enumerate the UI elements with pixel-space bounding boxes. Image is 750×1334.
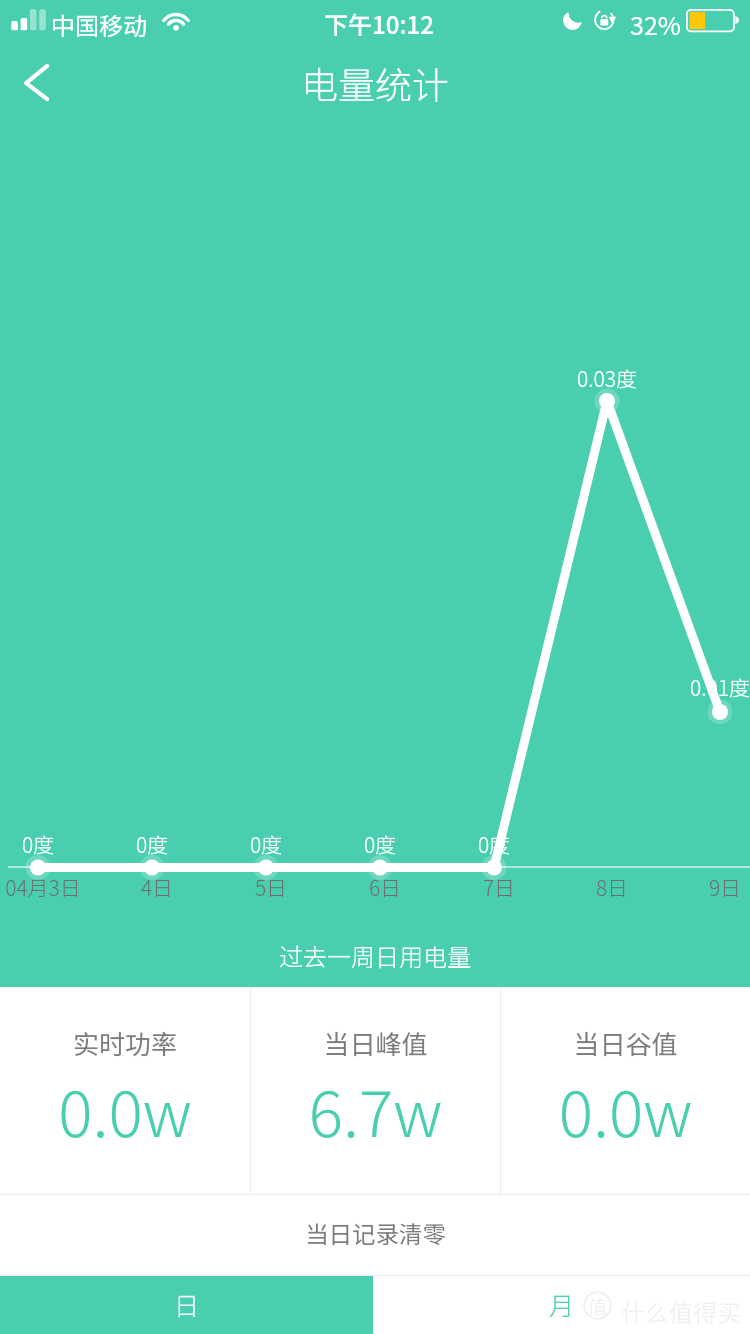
staticText: 04月3日	[0, 872, 123, 902]
staticText: 0度	[186, 829, 346, 859]
staticText: 7日	[419, 872, 579, 902]
staticText: 32%	[630, 6, 681, 42]
staticText: 中国移动	[51, 7, 147, 42]
staticText: 4日	[77, 872, 237, 902]
staticText: 日	[174, 1286, 200, 1322]
staticText: 过去一周日用电量	[0, 938, 750, 973]
staticText: 6.7w	[251, 1063, 500, 1156]
staticText: 8日	[532, 872, 692, 902]
staticText: 0度	[0, 829, 118, 859]
button[interactable]: Back	[0, 44, 76, 132]
staticText: 什么值得买	[621, 1294, 741, 1329]
button[interactable]: 日	[0, 1276, 373, 1334]
staticText: 电量统计	[0, 56, 750, 110]
staticText: 当日记录清零	[305, 1216, 446, 1250]
staticText: 下午10:12	[4, 6, 750, 41]
button[interactable]: 实时功率	[0, 987, 250, 1194]
staticText: 6日	[305, 872, 465, 902]
staticText: 9日	[645, 872, 750, 902]
staticText: 月	[549, 1286, 575, 1322]
staticText: 值	[588, 1292, 608, 1320]
staticText: 实时功率	[0, 1024, 250, 1062]
staticText: 当日峰值	[251, 1024, 500, 1062]
button[interactable]: 当日记录清零	[0, 1195, 750, 1275]
staticText: 0.01度	[640, 672, 750, 702]
staticText: 0度	[300, 829, 460, 859]
button[interactable]: 当日峰值	[251, 987, 500, 1194]
button[interactable]: 当日谷值	[501, 987, 750, 1194]
staticText: 0度	[72, 829, 232, 859]
button[interactable]: 月	[373, 1276, 750, 1334]
staticText: 当日谷值	[501, 1024, 750, 1062]
staticText: 0.03度	[527, 363, 687, 393]
staticText: 5日	[191, 872, 351, 902]
staticText: 0.0w	[501, 1063, 750, 1156]
staticText: 0度	[414, 829, 574, 859]
staticText: 0.0w	[0, 1063, 250, 1156]
